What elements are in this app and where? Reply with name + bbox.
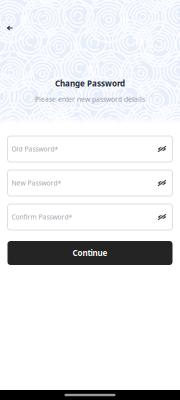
- staticText: Confirm Password*: [11, 213, 72, 221]
- staticText: Old Password*: [11, 145, 58, 153]
- staticText: Change Password: [55, 78, 125, 89]
- staticText: Please enter new password details: [35, 95, 145, 103]
- button[interactable]: Back: [0, 19, 20, 37]
- staticText: Continue: [72, 248, 107, 258]
- button[interactable]: Continue: [7, 241, 172, 265]
- staticText: New Password*: [11, 179, 61, 187]
